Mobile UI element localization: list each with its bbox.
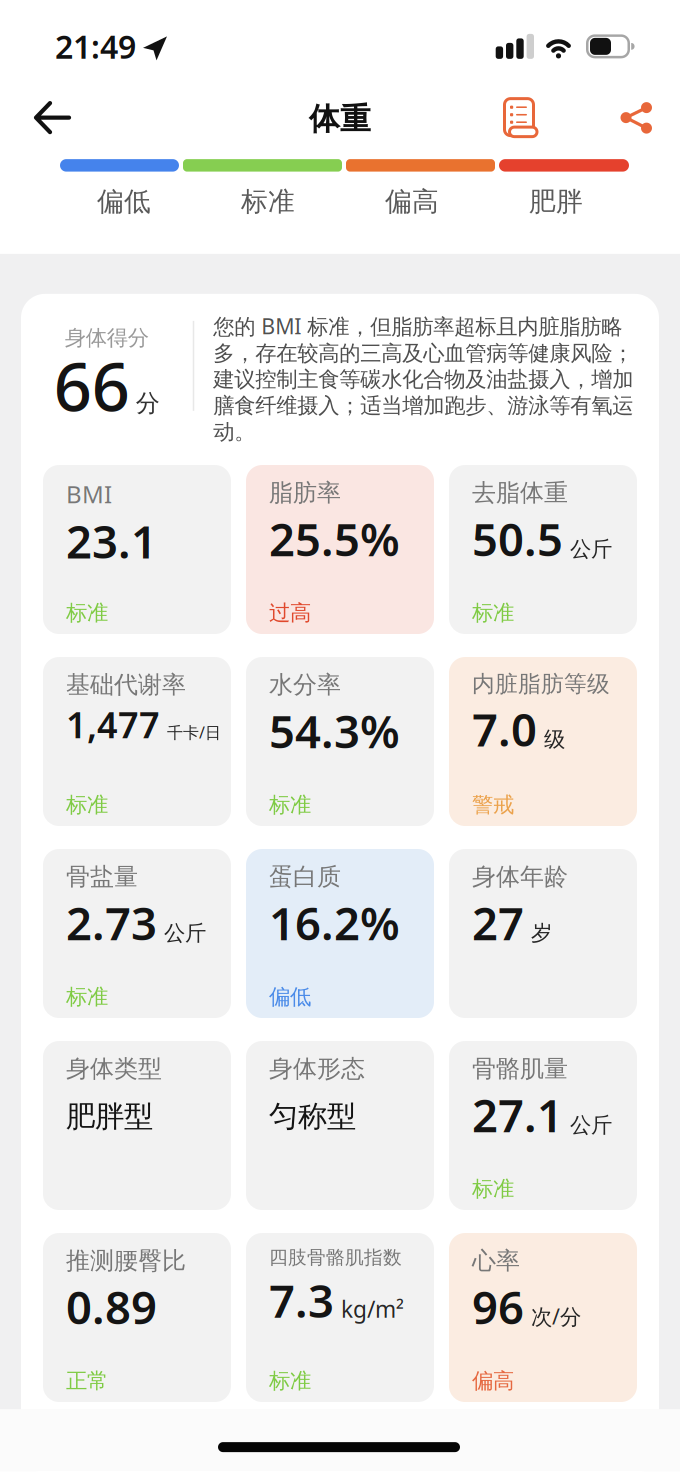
button[interactable]: Report: [503, 97, 539, 138]
staticText: 27.1: [472, 1084, 563, 1145]
staticText: 标准: [269, 1368, 311, 1394]
button[interactable]: 四肢骨骼肌指数: [246, 1233, 434, 1402]
staticText: 16.2%: [269, 892, 400, 953]
staticText: 96: [472, 1276, 524, 1337]
staticText: 肥胖: [529, 185, 583, 218]
staticText: 公斤: [570, 536, 612, 562]
staticText: 标准: [66, 792, 108, 818]
staticText: 骨盐量: [66, 862, 138, 891]
staticText: 公斤: [164, 920, 206, 946]
button[interactable]: BMI: [43, 465, 231, 634]
button[interactable]: 骨骼肌量: [449, 1041, 637, 1210]
staticText: 级: [544, 726, 565, 752]
staticText: 蛋白质: [269, 862, 341, 891]
staticText: 匀称型: [269, 1098, 356, 1134]
button[interactable]: 推测腰臀比: [43, 1233, 231, 1402]
staticText: 体重: [309, 100, 371, 138]
staticText: kg/m²: [341, 1294, 404, 1324]
staticText: 脂肪率: [269, 478, 341, 507]
staticText: 身体年龄: [472, 862, 568, 891]
staticText: 分: [136, 388, 160, 418]
staticText: 多，存在较高的三高及心血管病等健康风险；: [213, 340, 633, 366]
staticText: BMI: [66, 478, 112, 510]
button[interactable]: 内脏脂肪等级: [449, 657, 637, 826]
staticText: 标准: [472, 600, 514, 626]
button[interactable]: 骨盐量: [43, 849, 231, 1018]
staticText: 千卡/日: [167, 722, 221, 743]
staticText: 27: [472, 892, 524, 953]
staticText: 基础代谢率: [66, 670, 186, 699]
staticText: 23.1: [66, 511, 157, 571]
staticText: 偏低: [97, 185, 151, 218]
staticText: 25.5%: [269, 508, 400, 569]
staticText: 心率: [472, 1246, 520, 1275]
button[interactable]: Share: [620, 102, 652, 134]
staticText: 7.3: [269, 1270, 334, 1330]
staticText: 7.0: [472, 699, 537, 759]
staticText: 水分率: [269, 670, 341, 699]
staticText: 偏低: [269, 984, 311, 1010]
staticText: 50.5: [472, 508, 563, 569]
staticText: 膳食纤维摄入；适当增加跑步、游泳等有氧运: [213, 393, 633, 419]
button[interactable]: 水分率: [246, 657, 434, 826]
staticText: 66: [54, 341, 130, 430]
staticText: 标准: [66, 984, 108, 1010]
staticText: 建议控制主食等碳水化合物及油盐摄入，增加: [213, 366, 633, 393]
staticText: 标准: [472, 1176, 514, 1202]
button[interactable]: 基础代谢率: [43, 657, 231, 826]
button[interactable]: 身体类型: [43, 1041, 231, 1210]
staticText: 身体类型: [66, 1054, 162, 1083]
staticText: 过高: [269, 600, 311, 626]
staticText: 标准: [66, 600, 108, 626]
staticText: 岁: [531, 920, 552, 946]
button[interactable]: 去脂体重: [449, 465, 637, 634]
staticText: 次/分: [531, 1302, 581, 1330]
button[interactable]: 心率: [449, 1233, 637, 1402]
staticText: 四肢骨骼肌指数: [269, 1246, 402, 1269]
staticText: 去脂体重: [472, 478, 568, 507]
staticText: 标准: [241, 185, 295, 218]
button[interactable]: 蛋白质: [246, 849, 434, 1018]
staticText: 身体形态: [269, 1054, 365, 1083]
staticText: 内脏脂肪等级: [472, 670, 610, 698]
staticText: 54.3%: [269, 700, 400, 761]
staticText: 推测腰臀比: [66, 1246, 186, 1275]
staticText: 身体得分: [65, 325, 149, 351]
button[interactable]: 身体形态: [246, 1041, 434, 1210]
staticText: 偏高: [385, 185, 439, 218]
staticText: 1,477: [66, 700, 160, 748]
button[interactable]: 脂肪率: [246, 465, 434, 634]
staticText: 您的 BMI 标准，但脂肪率超标且内脏脂肪略: [213, 312, 622, 340]
staticText: 正常: [66, 1368, 108, 1394]
staticText: 骨骼肌量: [472, 1054, 568, 1083]
staticText: 21:49: [55, 25, 136, 68]
staticText: 肥胖型: [66, 1098, 153, 1134]
staticText: 偏高: [472, 1368, 514, 1394]
staticText: 2.73: [66, 892, 157, 953]
staticText: 警戒: [472, 792, 514, 818]
button[interactable]: 身体年龄: [449, 849, 637, 1018]
button[interactable]: Back: [33, 100, 71, 135]
staticText: 公斤: [570, 1112, 612, 1138]
staticText: 0.89: [66, 1276, 157, 1337]
staticText: 标准: [269, 792, 311, 818]
staticText: 动。: [213, 419, 255, 445]
